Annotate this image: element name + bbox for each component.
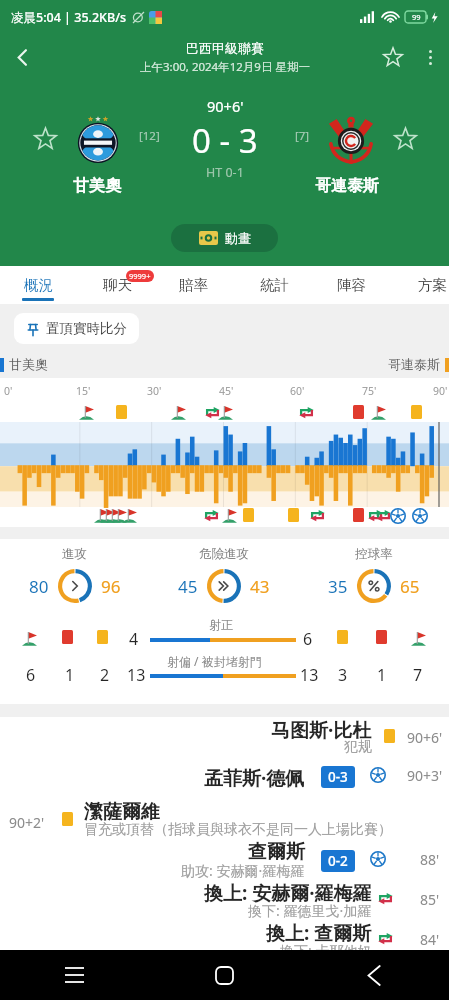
staticText: 概況 <box>24 276 53 294</box>
staticText: 99 <box>412 12 421 22</box>
staticText: 巴西甲級聯賽 <box>186 40 264 56</box>
staticText: 賠率 <box>179 276 208 294</box>
button[interactable]: Favorite home team <box>31 124 59 152</box>
staticText: 進攻 <box>62 546 87 562</box>
staticText: 統計 <box>260 276 289 294</box>
staticText: 马图斯·比杜 <box>271 717 372 743</box>
staticText: 0 - 3 <box>192 118 258 163</box>
staticText: 動畫 <box>225 230 251 246</box>
staticText: 75' <box>362 384 377 398</box>
button[interactable]: Favorite away team <box>391 124 419 152</box>
staticText: 哥連泰斯 <box>315 176 379 196</box>
staticText: 13 <box>300 664 319 686</box>
staticText: 1 <box>377 664 387 686</box>
staticText: 射偏 / 被封堵射門 <box>167 653 262 669</box>
staticText: 犯规 <box>344 738 372 756</box>
staticText: 13 <box>127 664 146 686</box>
staticText: 65 <box>400 575 420 598</box>
button[interactable]: Recent apps <box>0 950 149 1000</box>
staticText: 聊天 <box>103 276 132 294</box>
staticText: 88' <box>420 850 440 869</box>
button[interactable]: Favorite <box>373 37 413 77</box>
staticText: 45' <box>219 384 234 398</box>
staticText: 84' <box>420 930 440 949</box>
staticText: 助攻: 安赫爾·羅梅羅 <box>181 861 305 880</box>
staticText: 哥連泰斯 <box>388 356 440 372</box>
staticText: 0-3 <box>328 768 348 786</box>
staticText: 1 <box>65 664 75 686</box>
button[interactable]: 90+2' <box>0 800 449 840</box>
staticText: 35 <box>328 575 348 598</box>
staticText: 陣容 <box>337 276 366 294</box>
staticText: 凌晨5:04 | 35.2KB/s <box>11 9 127 26</box>
staticText: 96 <box>101 575 121 598</box>
staticText: 0-2 <box>328 852 348 870</box>
button[interactable]: Back <box>2 37 42 77</box>
staticText: 甘美奧 <box>9 356 48 372</box>
button[interactable]: 陣容 <box>317 266 385 304</box>
staticText: 90+6' <box>207 96 244 116</box>
staticText: 4 <box>129 628 139 650</box>
button[interactable]: 方案 <box>398 266 449 304</box>
staticText: 90+2' <box>9 813 45 832</box>
button[interactable]: 查爾斯 <box>0 840 449 880</box>
staticText: 方案 <box>418 276 447 294</box>
staticText: 孟菲斯·德佩 <box>204 765 305 791</box>
button[interactable]: 置頂實時比分 <box>14 313 139 344</box>
button[interactable]: 動畫 <box>171 224 278 252</box>
staticText: 7 <box>413 664 423 686</box>
staticText: 9999+ <box>129 271 151 281</box>
staticText: 換下: 羅德里戈·加羅 <box>248 901 372 920</box>
staticText: [12] <box>139 128 160 144</box>
staticText: 80 <box>29 575 49 598</box>
button[interactable]: 聊天 <box>83 266 151 304</box>
button[interactable]: 孟菲斯·德佩 <box>0 765 449 791</box>
staticText: 6 <box>303 628 313 650</box>
staticText: 43 <box>250 575 270 598</box>
staticText: 瀿薩爾維 <box>84 800 160 824</box>
staticText: 置頂實時比分 <box>46 320 127 337</box>
staticText: 換上: 安赫爾·羅梅羅 <box>204 880 372 906</box>
staticText: 換下: 卡耶他奴 <box>280 941 372 960</box>
staticText: 6 <box>26 664 36 686</box>
staticText: 15' <box>76 384 91 398</box>
button[interactable]: More options <box>413 40 447 74</box>
staticText: 90+3' <box>407 766 443 785</box>
staticText: 查爾斯 <box>248 840 305 864</box>
staticText: 85' <box>420 890 440 909</box>
staticText: HT 0-1 <box>206 164 244 181</box>
button[interactable]: 換上: 查爾斯 <box>0 920 449 960</box>
staticText: 射正 <box>209 617 233 632</box>
staticText: 30' <box>147 384 162 398</box>
staticText: 0' <box>4 384 13 398</box>
staticText: 控球率 <box>355 546 393 562</box>
staticText: 60' <box>290 384 305 398</box>
staticText: 3 <box>338 664 348 686</box>
staticText: 45 <box>178 575 198 598</box>
staticText: 90+6' <box>407 728 443 747</box>
staticText: 90' <box>433 384 448 398</box>
staticText: 甘美奧 <box>73 176 121 196</box>
staticText: 危險進攻 <box>199 546 249 562</box>
button[interactable]: 統計 <box>240 266 308 304</box>
button[interactable]: 概況 <box>4 266 72 304</box>
button[interactable]: 換上: 安赫爾·羅梅羅 <box>0 880 449 920</box>
staticText: [7] <box>295 128 310 144</box>
staticText: 2 <box>100 664 110 686</box>
button[interactable]: Back <box>299 950 449 1000</box>
button[interactable]: 賠率 <box>159 266 227 304</box>
staticText: 上午3:00, 2024年12月9日 星期一 <box>140 59 310 75</box>
staticText: 冒充或頂替（指球員與球衣不是同一人上場比賽） <box>84 821 392 839</box>
staticText: 換上: 查爾斯 <box>266 920 372 946</box>
button[interactable]: Home <box>149 950 299 1000</box>
button[interactable]: 马图斯·比杜 <box>0 717 449 761</box>
